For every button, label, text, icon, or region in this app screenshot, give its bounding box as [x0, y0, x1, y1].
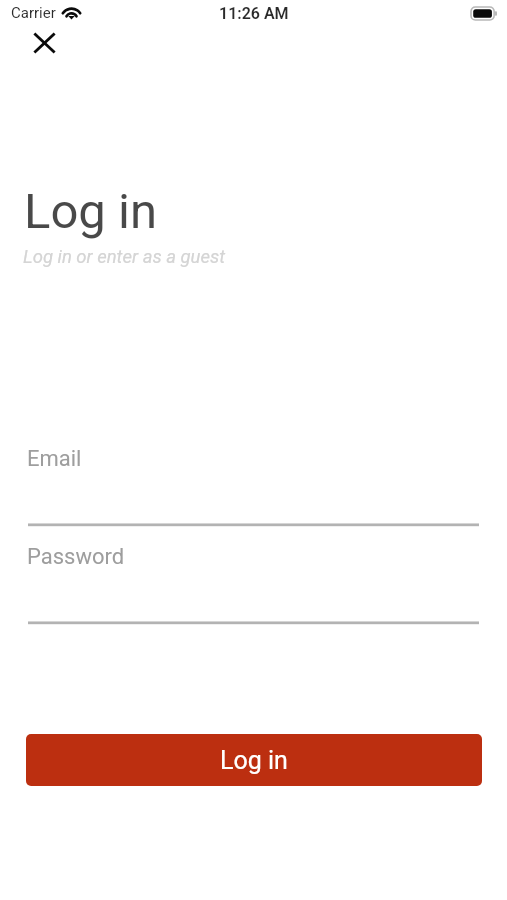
button[interactable]: Email — [27, 446, 480, 526]
button[interactable]: Close — [20, 19, 68, 67]
staticText: Carrier — [11, 4, 56, 22]
staticText: Email — [27, 446, 82, 472]
button[interactable]: Password — [27, 544, 480, 624]
staticText: Log in — [220, 746, 288, 775]
button[interactable]: Log in — [26, 734, 482, 786]
staticText: Log in or enter as a guest — [23, 246, 226, 268]
staticText: Password — [27, 544, 125, 570]
staticText: Log in — [24, 183, 157, 240]
staticText: 11:26 AM — [219, 4, 289, 23]
